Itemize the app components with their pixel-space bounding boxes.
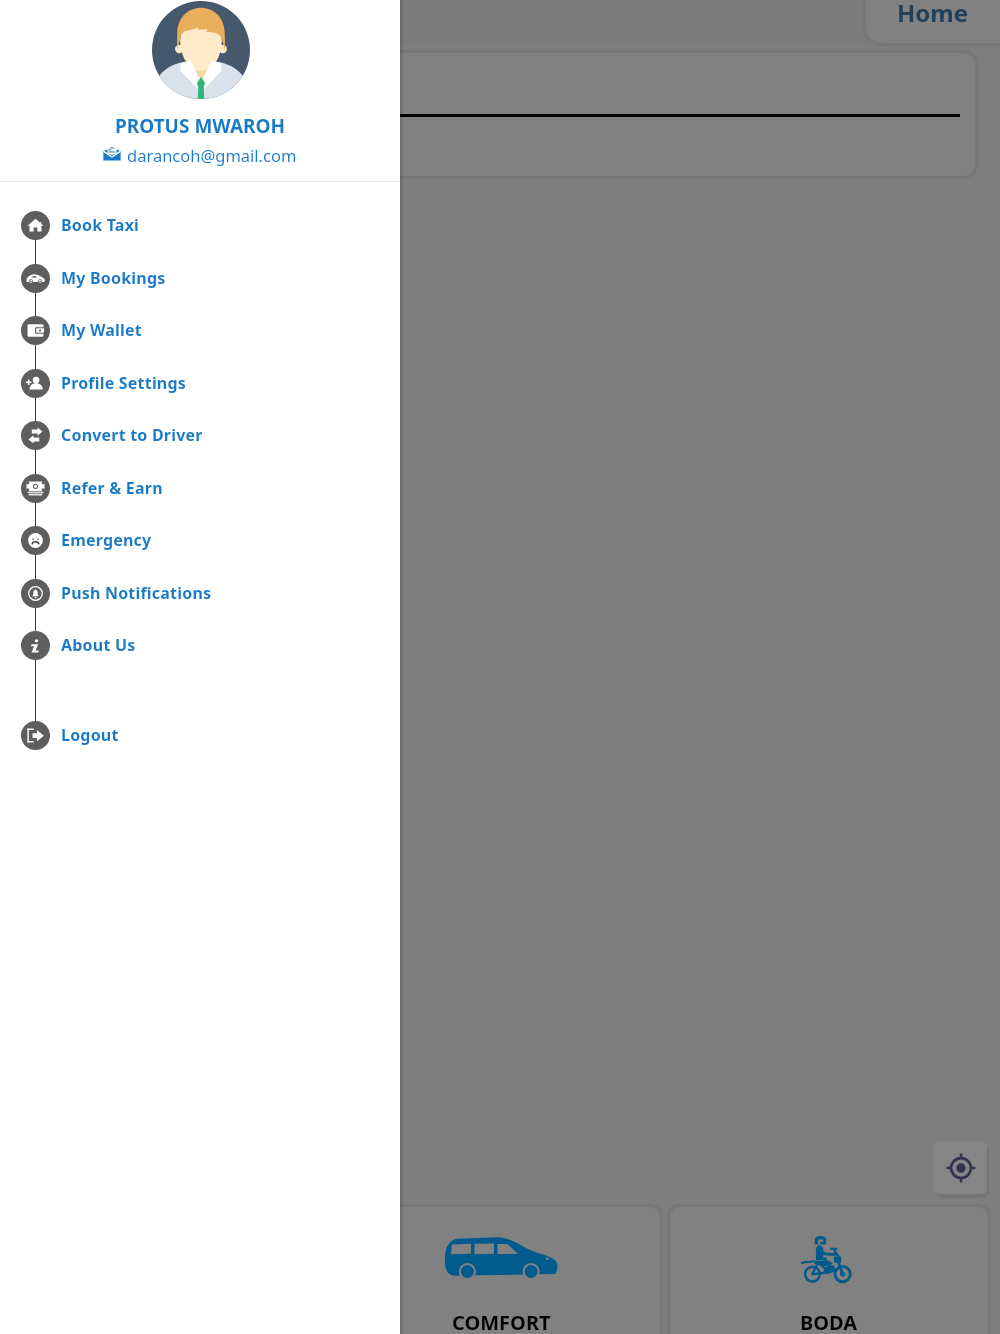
button[interactable]: Refer & Earn [0, 462, 400, 514]
staticText: darancoh@gmail.com [127, 144, 297, 166]
staticText: My Wallet [61, 319, 142, 341]
button[interactable] [8, 53, 975, 176]
staticText: COMFORT [452, 1309, 551, 1334]
button[interactable]: Logout [0, 709, 400, 761]
staticText: Home [897, 0, 969, 29]
staticText: My Bookings [61, 267, 166, 289]
button[interactable]: About Us [0, 619, 400, 671]
staticText: Logout [61, 724, 119, 746]
button[interactable] [0, 0, 400, 181]
staticText: Push Notifications [61, 582, 212, 604]
staticText: BODA [800, 1309, 858, 1334]
staticText: Refer & Earn [61, 477, 163, 499]
staticText: Profile Settings [61, 372, 187, 394]
staticText: Convert to Driver [61, 424, 203, 446]
staticText: PROTUS MWAROH [0, 113, 400, 139]
button[interactable]: COMFORT [342, 1207, 660, 1334]
button[interactable]: Profile Settings [0, 357, 400, 409]
staticText: Book Taxi [61, 214, 140, 236]
button[interactable]: BODA [670, 1207, 988, 1334]
button[interactable]: Home [866, 0, 1000, 43]
button[interactable]: My location [934, 1141, 987, 1194]
button[interactable]: My Bookings [0, 252, 400, 304]
staticText: About Us [61, 634, 136, 656]
button[interactable]: Emergency [0, 514, 400, 566]
button[interactable]: Convert to Driver [0, 409, 400, 461]
staticText: Emergency [61, 529, 152, 551]
button[interactable]: My Wallet [0, 304, 400, 356]
button[interactable]: Push Notifications [0, 567, 400, 619]
button[interactable]: Book Taxi [0, 199, 400, 251]
